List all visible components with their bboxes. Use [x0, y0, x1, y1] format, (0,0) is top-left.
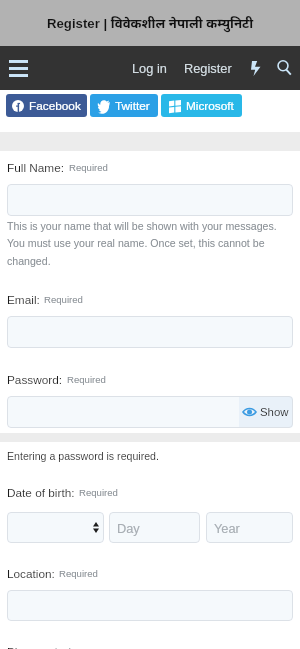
staticText: Show	[260, 406, 289, 419]
button[interactable]: Day	[109, 512, 200, 543]
button[interactable]: Search	[270, 46, 298, 90]
staticText: Register | विवेकशील नेपाली कम्युनिटी	[47, 14, 254, 32]
staticText: Required	[69, 162, 108, 173]
staticText: Day	[117, 521, 140, 535]
staticText: This is your name that will be shown wit…	[7, 220, 289, 268]
staticText: Microsoft	[186, 99, 234, 112]
staticText: Email:	[7, 293, 40, 306]
button[interactable]	[7, 316, 293, 348]
button[interactable]: Twitter	[90, 94, 158, 117]
button[interactable]: Activity	[242, 46, 270, 90]
button[interactable]: Month	[7, 512, 104, 543]
staticText: Password:	[7, 373, 63, 386]
staticText: Full Name:	[7, 161, 65, 174]
button[interactable]: Microsoft	[161, 94, 242, 117]
staticText: Required	[32, 646, 71, 649]
staticText: Required	[79, 487, 118, 498]
button[interactable]: Show	[239, 396, 293, 428]
staticText: Date of birth:	[7, 486, 75, 499]
button[interactable]: Menu	[0, 46, 40, 90]
staticText: Location:	[7, 567, 55, 580]
staticText: Bio:	[7, 645, 28, 649]
staticText: Entering a password is required.	[7, 450, 159, 462]
staticText: Log in	[132, 61, 167, 75]
button[interactable]: Log in	[126, 46, 172, 90]
staticText: Twitter	[115, 99, 150, 112]
button[interactable]: Facebook	[6, 94, 87, 117]
button[interactable]	[7, 184, 293, 216]
button[interactable]: Register	[178, 46, 238, 90]
staticText: Required	[67, 374, 106, 385]
staticText: Register	[184, 61, 232, 75]
staticText: Required	[59, 568, 98, 579]
staticText: Required	[44, 294, 83, 305]
staticText: Year	[214, 521, 240, 535]
button[interactable]	[7, 590, 293, 621]
staticText: Facebook	[29, 99, 81, 112]
button[interactable]: Year	[206, 512, 293, 543]
